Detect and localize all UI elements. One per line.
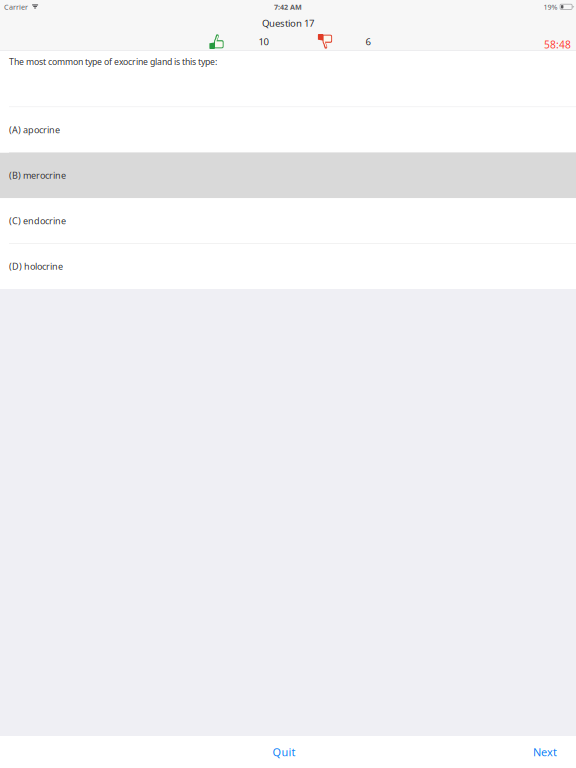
staticText: 58:48 [544,37,571,51]
staticText: (B) merocrine [9,169,66,181]
button[interactable]: (B) merocrine [0,153,576,198]
button[interactable]: Next [519,736,571,768]
staticText: Quit [272,745,295,759]
staticText: 10 [258,35,268,48]
staticText: Question 17 [262,16,314,30]
staticText: (C) endocrine [9,215,66,227]
staticText: Next [533,745,557,759]
staticText: 6 [365,35,370,48]
staticText: 7:42 AM [274,2,302,12]
button[interactable]: (A) apocrine [0,107,576,153]
staticText: (A) apocrine [9,124,60,136]
button[interactable]: (C) endocrine [0,198,576,244]
button[interactable]: Upvote [209,34,224,49]
button[interactable]: Downvote [317,34,332,49]
staticText: 19% [544,2,558,12]
button[interactable]: (D) holocrine [0,244,576,289]
staticText: The most common type of exocrine gland i… [9,56,217,68]
staticText: Carrier [4,2,28,12]
button[interactable]: Quit [258,736,309,768]
staticText: (D) holocrine [9,260,63,272]
